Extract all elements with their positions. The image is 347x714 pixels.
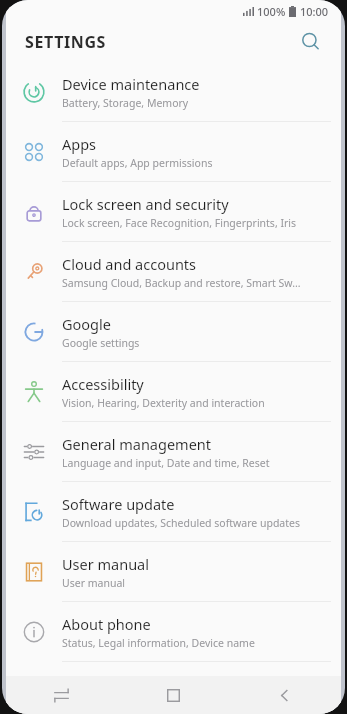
staticText: Lock screen and security — [62, 194, 229, 214]
staticText: Status, Legal information, Device name — [62, 636, 255, 650]
button[interactable]: Accessibility — [6, 362, 341, 421]
button[interactable]: Home — [117, 676, 229, 714]
staticText: Default apps, App permissions — [62, 156, 213, 170]
staticText: About phone — [62, 614, 151, 634]
staticText: 100% — [257, 4, 286, 19]
staticText: Google settings — [62, 336, 140, 350]
staticText: Lock screen, Face Recognition, Fingerpri… — [62, 216, 297, 230]
staticText: Google — [62, 314, 111, 334]
button[interactable]: Google — [6, 302, 341, 361]
staticText: Device maintenance — [62, 74, 200, 94]
staticText: SETTINGS — [25, 31, 106, 53]
staticText: User manual — [62, 576, 125, 590]
staticText: Language and input, Date and time, Reset — [62, 456, 270, 470]
staticText: User manual — [62, 554, 149, 574]
staticText: General management — [62, 434, 212, 454]
button[interactable]: Device maintenance — [6, 62, 341, 121]
button[interactable]: Software update — [6, 482, 341, 541]
staticText: Cloud and accounts — [62, 254, 197, 274]
button[interactable]: Cloud and accounts — [6, 242, 341, 301]
button[interactable]: User manual — [6, 542, 341, 601]
button[interactable]: Back — [229, 676, 341, 714]
staticText: Battery, Storage, Memory — [62, 96, 189, 110]
button[interactable]: Lock screen and security — [6, 182, 341, 241]
staticText: Apps — [62, 134, 97, 154]
button[interactable]: General management — [6, 422, 341, 481]
staticText: Accessibility — [62, 374, 144, 394]
staticText: Software update — [62, 494, 175, 514]
button[interactable]: Search — [291, 22, 331, 62]
staticText: Vision, Hearing, Dexterity and interacti… — [62, 396, 265, 410]
staticText: 10:00 — [300, 4, 329, 19]
staticText: Download updates, Scheduled software upd… — [62, 516, 300, 530]
staticText: Samsung Cloud, Backup and restore, Smart… — [62, 276, 301, 290]
button[interactable]: About phone — [6, 602, 341, 661]
button[interactable]: Recent apps — [6, 676, 117, 714]
button[interactable]: Apps — [6, 122, 341, 181]
